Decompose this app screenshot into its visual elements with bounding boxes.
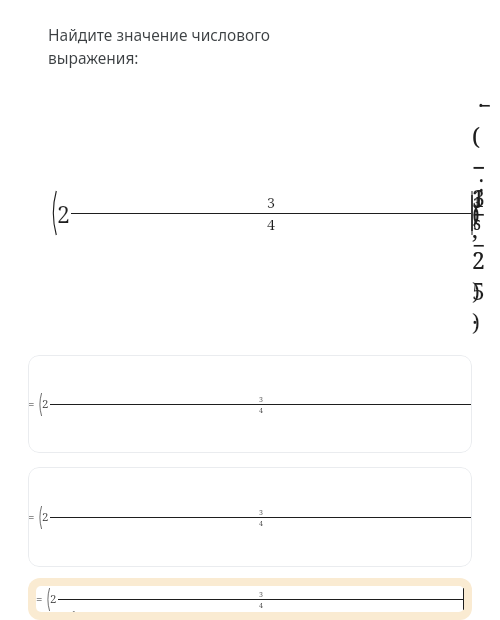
staticText: 3 (259, 507, 263, 517)
staticText: = (36, 591, 46, 607)
staticText: 2 (42, 396, 49, 412)
staticText: 3 (267, 193, 275, 212)
button[interactable]: = (28, 467, 472, 567)
staticText: 4 (259, 405, 263, 415)
button[interactable]: = (28, 355, 472, 453)
staticText: 2 (42, 509, 49, 525)
staticText: = (28, 509, 38, 525)
staticText: Найдите значение числового выражения: (48, 24, 270, 69)
staticText: 4 (259, 600, 263, 610)
staticText: 4 (259, 518, 263, 528)
staticText: 2 (50, 591, 57, 607)
staticText: 3 (259, 589, 263, 599)
staticText: 3 (259, 394, 263, 404)
staticText: 2 (57, 198, 70, 229)
staticText: 4 (267, 215, 275, 234)
staticText: = (28, 396, 38, 412)
button[interactable]: = (28, 578, 472, 620)
